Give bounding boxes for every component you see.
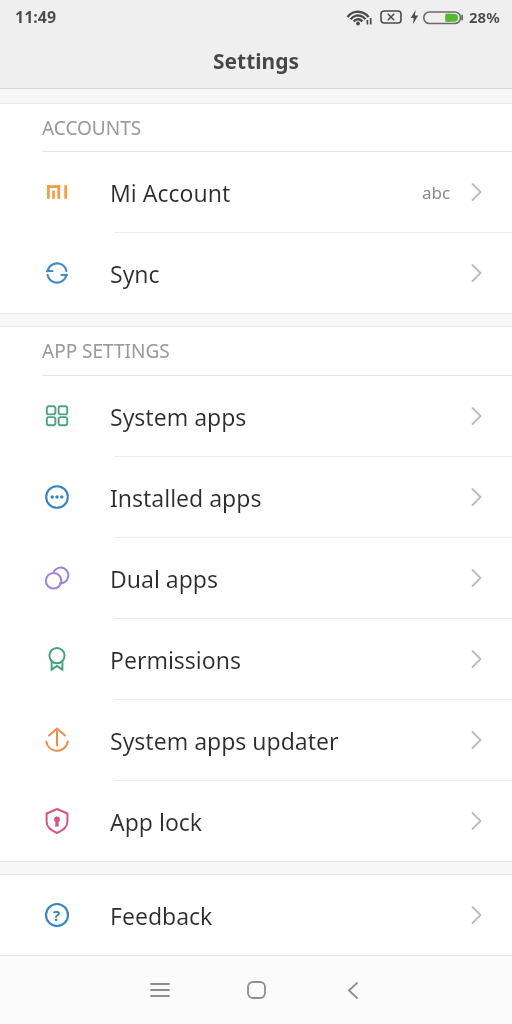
staticText: Mi Account (110, 177, 231, 208)
staticText: App lock (110, 806, 203, 837)
staticText: System apps (110, 401, 247, 432)
button[interactable]: System apps updater (0, 700, 512, 780)
button[interactable]: Installed apps (0, 457, 512, 537)
button[interactable]: System apps (0, 376, 512, 456)
staticText: Settings (213, 47, 300, 76)
button[interactable]: Mi Account (0, 152, 512, 232)
staticText: 28% (469, 7, 500, 27)
staticText: System apps updater (110, 725, 339, 756)
button[interactable] (138, 968, 182, 1012)
staticText: Installed apps (110, 482, 262, 513)
button[interactable] (234, 968, 278, 1012)
staticText: Feedback (110, 900, 213, 931)
staticText: 11:49 (15, 6, 57, 28)
button[interactable]: Dual apps (0, 538, 512, 618)
staticText: Dual apps (110, 563, 219, 594)
staticText: abc (422, 181, 451, 204)
button[interactable]: ? (0, 875, 512, 955)
button[interactable] (331, 968, 375, 1012)
staticText: Sync (110, 258, 160, 289)
staticText: ACCOUNTS (42, 115, 142, 141)
staticText: ? (53, 905, 61, 925)
staticText: APP SETTINGS (42, 338, 170, 364)
staticText: Permissions (110, 644, 241, 675)
button[interactable]: Permissions (0, 619, 512, 699)
button[interactable]: App lock (0, 781, 512, 861)
button[interactable]: Sync (0, 233, 512, 313)
